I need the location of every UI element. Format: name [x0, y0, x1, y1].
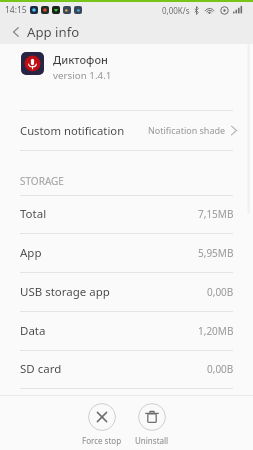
- staticText: Custom notification: [20, 123, 125, 138]
- staticText: 5,95MB: [198, 246, 234, 260]
- staticText: App: [20, 245, 42, 261]
- staticText: Uninstall: [135, 435, 169, 446]
- staticText: 14:15: [5, 4, 27, 16]
- staticText: Диктофон: [53, 52, 108, 67]
- staticText: version 1.4.1: [53, 69, 112, 82]
- staticText: 1,20MB: [198, 324, 234, 338]
- button[interactable]: Custom notification: [0, 111, 253, 151]
- button[interactable]: USB storage app: [0, 272, 253, 311]
- staticText: 7,15MB: [198, 207, 234, 221]
- staticText: STORAGE: [20, 174, 64, 188]
- staticText: USB storage app: [20, 284, 110, 300]
- staticText: 0,00K/s: [162, 5, 190, 16]
- staticText: 0,00B: [207, 362, 234, 376]
- button[interactable]: Back: [0, 21, 27, 45]
- staticText: Force stop: [82, 435, 122, 446]
- button[interactable]: Total: [0, 195, 253, 233]
- button[interactable]: SD card: [0, 350, 253, 388]
- button[interactable]: Диктофон: [0, 44, 253, 111]
- button[interactable]: Force stop: [80, 403, 124, 446]
- staticText: SD card: [20, 361, 62, 377]
- staticText: App info: [27, 23, 80, 41]
- button[interactable]: Uninstall: [130, 403, 174, 446]
- button[interactable]: App: [0, 233, 253, 272]
- staticText: Notification shade: [148, 124, 226, 136]
- staticText: 0,00B: [207, 285, 234, 299]
- staticText: Data: [20, 323, 46, 339]
- staticText: Total: [20, 206, 47, 222]
- button[interactable]: Data: [0, 311, 253, 350]
